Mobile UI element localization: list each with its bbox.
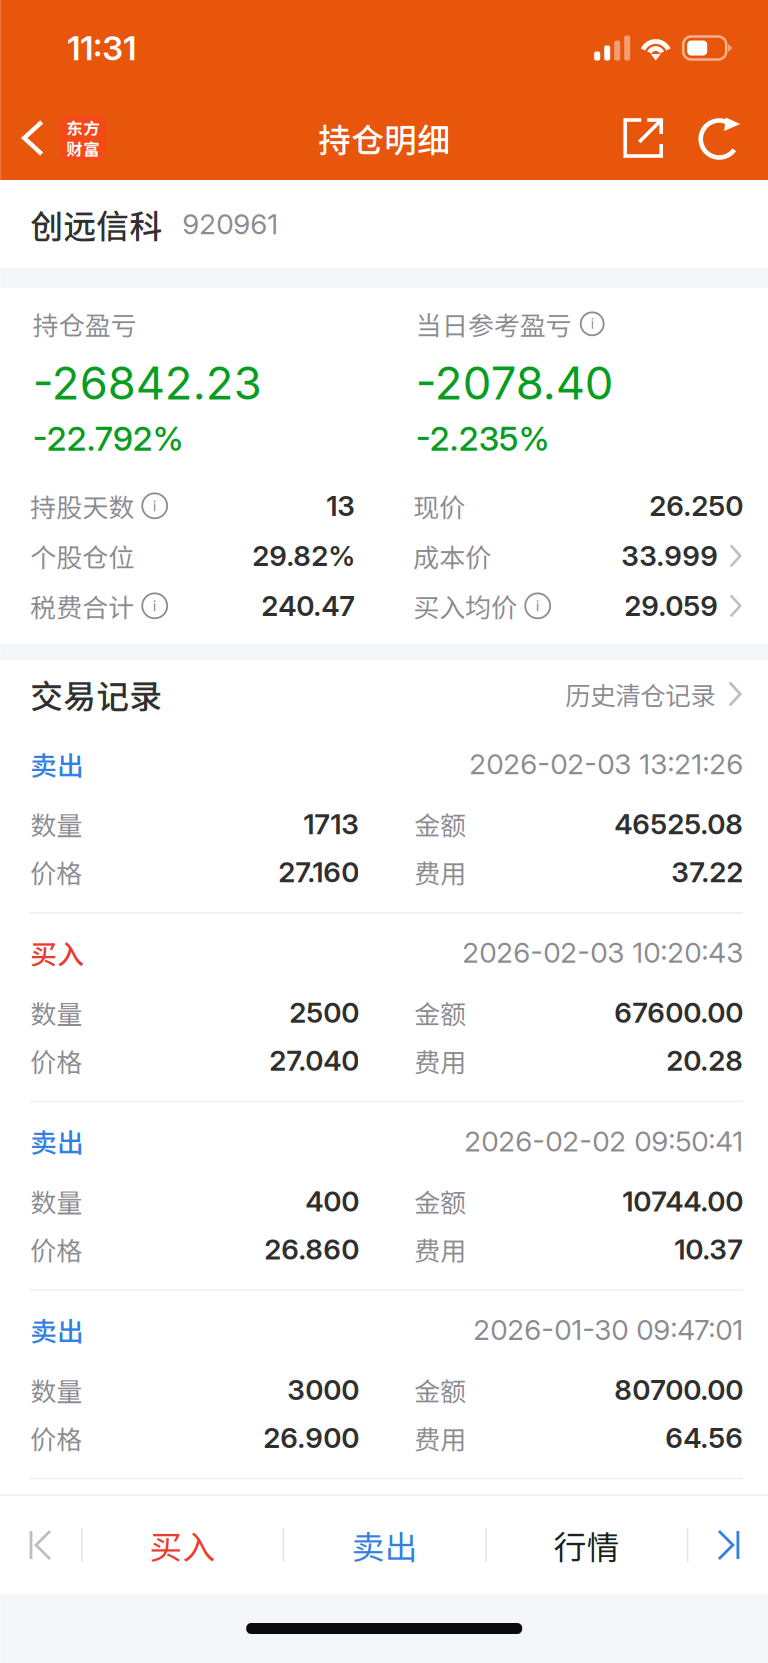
staticText: 46525.08 [614, 807, 743, 841]
staticText: 财富 [66, 136, 100, 160]
button[interactable]: 买入均价 [413, 581, 743, 631]
staticText: 持股天数 [30, 487, 134, 525]
staticText: 29.059 [624, 589, 718, 623]
staticText: -2.235% [416, 418, 550, 459]
staticText: 交易记录 [30, 670, 162, 718]
staticText: 买入 [150, 1521, 216, 1569]
staticText: 成本价 [413, 537, 491, 575]
staticText: 26.860 [264, 1232, 359, 1266]
staticText: 卖出 [30, 1122, 84, 1160]
staticText: 13 [326, 489, 355, 523]
staticText: 37.22 [671, 855, 743, 889]
staticText: 个股仓位 [30, 537, 134, 575]
button[interactable]: 下一页 [688, 1496, 768, 1594]
staticText: 26.900 [263, 1421, 359, 1455]
button[interactable]: 历史清仓记录 [565, 676, 743, 712]
staticText: 行情 [554, 1521, 620, 1569]
button[interactable]: 分享 [604, 103, 680, 173]
staticText: 1713 [303, 807, 359, 841]
staticText: 费用 [414, 853, 466, 891]
staticText: 金额 [414, 1371, 466, 1409]
button[interactable]: 成本价 [413, 531, 743, 581]
button[interactable]: 上一页 [0, 1496, 81, 1594]
button[interactable]: 行情 [487, 1496, 687, 1594]
staticText: i [536, 597, 540, 615]
staticText: 税费合计 [30, 587, 134, 625]
staticText: 价格 [30, 1419, 82, 1457]
staticText: 金额 [414, 805, 466, 843]
staticText: 卖出 [30, 745, 84, 783]
staticText: 创远信科 [30, 200, 162, 248]
staticText: i [153, 497, 157, 515]
staticText: 数量 [30, 994, 82, 1031]
staticText: 数量 [30, 1182, 82, 1220]
staticText: 2026-02-02 09:50:41 [464, 1124, 743, 1158]
button[interactable]: 买入 [83, 1496, 283, 1594]
staticText: 10744.00 [622, 1184, 743, 1218]
staticText: 卖出 [352, 1521, 418, 1569]
staticText: 29.82% [252, 539, 355, 573]
staticText: 400 [305, 1184, 359, 1218]
staticText: i [591, 316, 594, 332]
staticText: 27.160 [278, 855, 359, 889]
staticText: 卖出 [30, 1310, 84, 1349]
staticText: 买入 [30, 933, 84, 972]
staticText: -22.792% [33, 418, 184, 459]
staticText: i [153, 597, 157, 615]
staticText: 价格 [30, 1042, 82, 1079]
staticText: 现价 [413, 487, 465, 525]
button[interactable]: 刷新 [680, 102, 754, 174]
staticText: 金额 [414, 1182, 466, 1220]
staticText: -26842.23 [33, 356, 262, 410]
staticText: 3000 [287, 1373, 359, 1407]
staticText: 历史清仓记录 [565, 676, 715, 712]
staticText: 费用 [414, 1419, 466, 1457]
staticText: 240.47 [261, 589, 355, 623]
staticText: 2026-02-03 10:20:43 [462, 936, 743, 970]
staticText: 持仓明细 [318, 114, 450, 162]
staticText: 920961 [182, 207, 278, 241]
staticText: 33.999 [621, 539, 718, 573]
staticText: 数量 [30, 1371, 82, 1409]
staticText: 2026-01-30 09:47:01 [473, 1313, 743, 1347]
staticText: 持仓盈亏 [33, 305, 137, 343]
staticText: 11:31 [67, 28, 136, 68]
staticText: 价格 [30, 853, 82, 891]
staticText: 2500 [289, 996, 359, 1030]
staticText: 20.28 [666, 1044, 743, 1078]
staticText: 当日参考盈亏 [416, 305, 572, 343]
staticText: 价格 [30, 1230, 82, 1268]
staticText: 数量 [30, 805, 82, 843]
staticText: 费用 [414, 1230, 466, 1268]
staticText: 费用 [414, 1042, 466, 1079]
staticText: -2078.40 [416, 356, 614, 410]
staticText: 64.56 [665, 1421, 743, 1455]
staticText: 东方 [66, 115, 100, 139]
staticText: 金额 [414, 994, 466, 1031]
staticText: 27.040 [269, 1044, 359, 1078]
staticText: 10.37 [674, 1232, 743, 1266]
staticText: 2026-02-03 13:21:26 [469, 747, 743, 781]
staticText: 买入均价 [413, 587, 517, 625]
staticText: 80700.00 [614, 1373, 743, 1407]
button[interactable]: 卖出 [284, 1496, 485, 1594]
staticText: 67600.00 [614, 996, 743, 1030]
button[interactable]: 返回 东方财富 [0, 103, 114, 173]
staticText: 26.250 [649, 489, 743, 523]
